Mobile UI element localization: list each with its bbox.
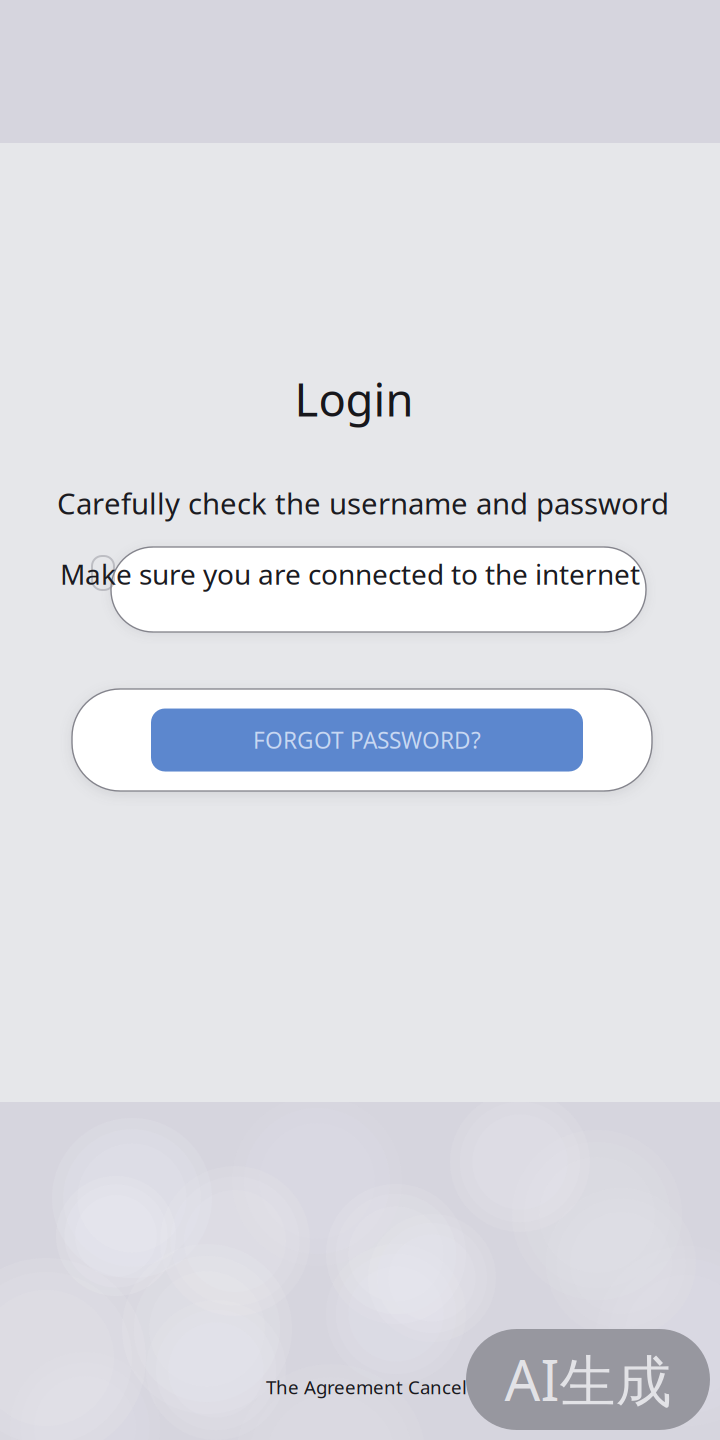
staticText: Login (294, 369, 413, 429)
button[interactable]: FORGOT PASSWORD? (72, 689, 652, 791)
staticText: Make sure you are connected to the inter… (60, 555, 640, 593)
button[interactable]: The Agreement Cancel (266, 1374, 526, 1400)
staticText: FORGOT PASSWORD? (253, 725, 481, 755)
button[interactable]: Username field (111, 547, 646, 632)
staticText: AI生成 (504, 1342, 671, 1417)
staticText: Carefully check the username and passwor… (57, 483, 669, 522)
staticText: The Agreement Cancel (266, 1375, 467, 1399)
